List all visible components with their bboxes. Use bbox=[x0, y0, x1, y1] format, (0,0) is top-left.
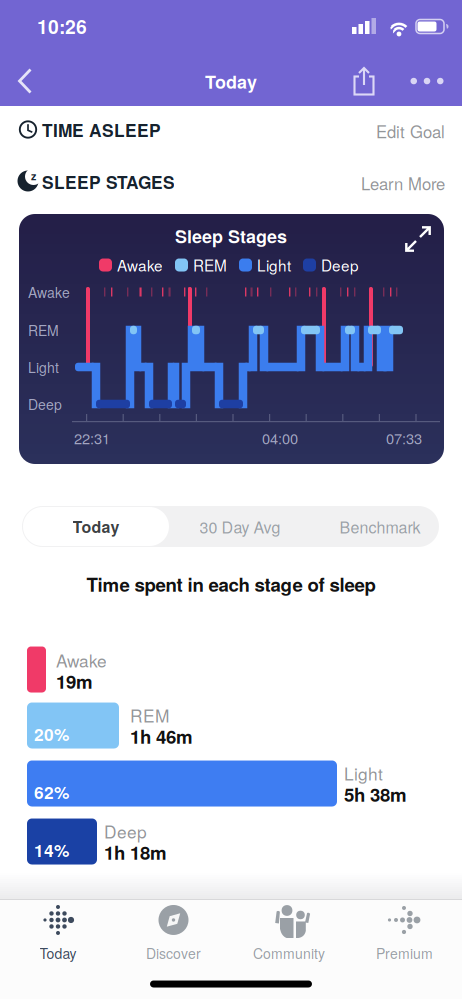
staticText: 1h 46m bbox=[130, 723, 193, 749]
staticText: Light bbox=[344, 761, 383, 785]
staticText: REM bbox=[193, 254, 227, 276]
staticText: Learn More bbox=[361, 171, 445, 195]
staticText: Deep bbox=[321, 254, 359, 276]
staticText: Benchmark bbox=[339, 515, 420, 538]
button[interactable]: Back bbox=[2, 59, 46, 103]
staticText: 20% bbox=[34, 722, 69, 746]
button[interactable]: Benchmark bbox=[310, 507, 449, 546]
staticText: Premium bbox=[376, 943, 433, 963]
button[interactable]: Today bbox=[8, 902, 108, 964]
staticText: Awake bbox=[56, 648, 107, 672]
button[interactable]: More bbox=[405, 59, 449, 103]
staticText: z bbox=[31, 168, 36, 184]
button[interactable]: 30 Day Avg bbox=[170, 507, 309, 546]
staticText: Community bbox=[253, 943, 325, 963]
button[interactable]: Expand bbox=[401, 222, 435, 256]
staticText: TIME ASLEEP bbox=[42, 118, 161, 142]
staticText: Today bbox=[205, 69, 257, 94]
button[interactable]: Learn More bbox=[315, 168, 445, 198]
staticText: Awake bbox=[28, 282, 70, 302]
staticText: Light bbox=[28, 357, 59, 377]
staticText: Awake bbox=[117, 254, 163, 276]
button[interactable]: Edit Goal bbox=[355, 116, 445, 146]
staticText: Sleep Stages bbox=[175, 223, 287, 249]
staticText: 04:00 bbox=[262, 427, 298, 448]
staticText: 1h 18m bbox=[104, 839, 167, 865]
staticText: SLEEP STAGES bbox=[42, 170, 175, 194]
staticText: 14% bbox=[34, 838, 69, 862]
staticText: REM bbox=[28, 320, 59, 340]
staticText: 07:33 bbox=[386, 427, 422, 448]
staticText: Today bbox=[72, 515, 119, 538]
staticText: 22:31 bbox=[74, 427, 110, 448]
staticText: Discover bbox=[146, 943, 201, 963]
staticText: Time spent in each stage of sleep bbox=[86, 571, 375, 597]
button[interactable]: Share bbox=[342, 59, 386, 103]
staticText: 19m bbox=[56, 668, 93, 694]
staticText: 5h 38m bbox=[344, 781, 407, 807]
staticText: Edit Goal bbox=[376, 119, 445, 143]
button[interactable]: Premium bbox=[354, 902, 454, 964]
staticText: 10:26 bbox=[37, 12, 87, 40]
staticText: Deep bbox=[104, 819, 147, 843]
staticText: Deep bbox=[28, 394, 62, 414]
button[interactable]: Today bbox=[23, 507, 169, 546]
staticText: Light bbox=[257, 254, 291, 276]
button[interactable]: Community bbox=[234, 902, 344, 964]
staticText: Today bbox=[39, 943, 76, 963]
staticText: REM bbox=[130, 703, 169, 727]
staticText: 62% bbox=[34, 780, 69, 804]
staticText: 30 Day Avg bbox=[199, 515, 280, 538]
button[interactable]: Discover bbox=[123, 902, 223, 964]
